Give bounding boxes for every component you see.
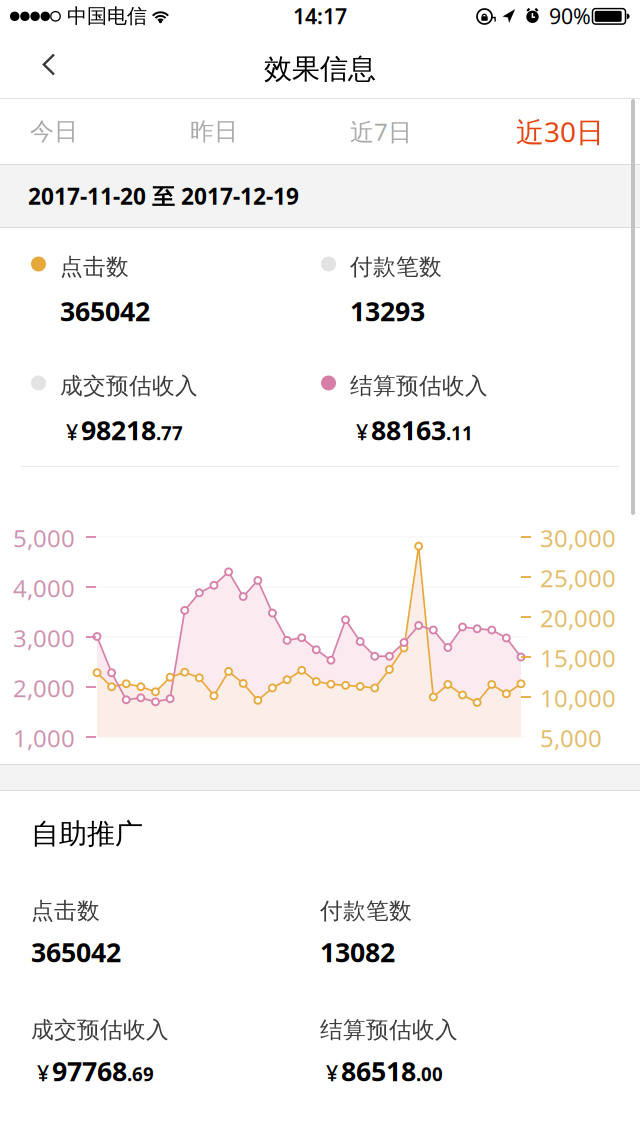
staticText: 今日 bbox=[30, 117, 78, 146]
staticText: 20,000 bbox=[540, 602, 616, 634]
staticText: 86518 bbox=[341, 1053, 416, 1089]
staticText: 365042 bbox=[60, 293, 150, 329]
staticText: 365042 bbox=[31, 934, 121, 970]
staticText: 自助推广 bbox=[31, 817, 143, 851]
staticText: 结算预估收入 bbox=[320, 1016, 458, 1044]
staticText: .77 bbox=[156, 421, 183, 445]
staticText: 15,000 bbox=[540, 642, 616, 674]
staticText: 13082 bbox=[320, 934, 395, 970]
staticText: 付款笔数 bbox=[320, 897, 412, 925]
staticText: 付款笔数 bbox=[350, 253, 442, 281]
staticText: 14:17 bbox=[293, 2, 347, 30]
button[interactable]: 近7日 bbox=[320, 99, 480, 164]
staticText: 结算预估收入 bbox=[350, 372, 488, 400]
staticText: 13293 bbox=[350, 293, 425, 329]
staticText: ¥ bbox=[37, 1059, 49, 1087]
staticText: ¥ bbox=[66, 418, 78, 446]
staticText: 近7日 bbox=[350, 116, 412, 147]
staticText: 5,000 bbox=[540, 722, 602, 754]
staticText: 中国电信 bbox=[67, 4, 147, 28]
staticText: 4,000 bbox=[13, 572, 75, 604]
staticText: .11 bbox=[446, 421, 473, 445]
staticText: .00 bbox=[416, 1062, 443, 1086]
staticText: 1,000 bbox=[13, 722, 75, 754]
staticText: 成交预估收入 bbox=[60, 372, 198, 400]
staticText: 88163 bbox=[371, 412, 446, 448]
staticText: 2,000 bbox=[13, 672, 75, 704]
staticText: ¥ bbox=[326, 1059, 338, 1087]
staticText: 98218 bbox=[81, 412, 156, 448]
staticText: 效果信息 bbox=[264, 52, 376, 86]
staticText: 点击数 bbox=[31, 897, 100, 925]
staticText: 30,000 bbox=[540, 522, 616, 554]
button[interactable]: 近30日 bbox=[480, 99, 640, 164]
staticText: ¥ bbox=[356, 418, 368, 446]
staticText: 97768 bbox=[52, 1053, 127, 1089]
staticText: 近30日 bbox=[516, 113, 604, 150]
button[interactable]: 今日 bbox=[0, 99, 160, 164]
button[interactable]: Back bbox=[0, 40, 78, 98]
staticText: 5,000 bbox=[13, 522, 75, 554]
staticText: 90% bbox=[549, 2, 591, 30]
staticText: 2017-11-20 至 2017-12-19 bbox=[28, 181, 299, 211]
staticText: 3,000 bbox=[13, 622, 75, 654]
button[interactable]: 昨日 bbox=[160, 99, 320, 164]
staticText: 点击数 bbox=[60, 253, 129, 281]
staticText: 昨日 bbox=[190, 117, 238, 146]
staticText: .69 bbox=[127, 1062, 154, 1086]
staticText: 25,000 bbox=[540, 562, 616, 594]
staticText: 10,000 bbox=[540, 682, 616, 714]
staticText: 成交预估收入 bbox=[31, 1016, 169, 1044]
